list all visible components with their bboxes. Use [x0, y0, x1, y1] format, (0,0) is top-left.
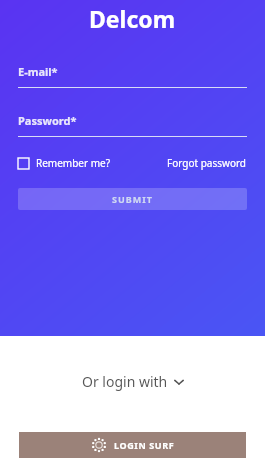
- button[interactable]: Or login with: [82, 372, 184, 391]
- button[interactable]: Remember me?: [18, 156, 111, 170]
- button[interactable]: Surf logo: [19, 432, 246, 458]
- staticText: Or login with: [82, 372, 168, 391]
- button[interactable]: E-mail*: [18, 64, 247, 88]
- staticText: Delcom: [89, 3, 176, 34]
- staticText: LOGIN SURF: [114, 439, 175, 451]
- staticText: SUBMIT: [112, 193, 153, 205]
- other: Surf logo: [91, 437, 107, 453]
- staticText: Password*: [18, 113, 77, 128]
- staticText: Remember me?: [36, 156, 111, 170]
- staticText: Forgot password: [167, 156, 247, 170]
- button[interactable]: SUBMIT: [18, 188, 247, 210]
- button[interactable]: Password*: [18, 113, 247, 137]
- button[interactable]: Forgot password: [167, 156, 247, 170]
- staticText: E-mail*: [18, 64, 58, 79]
